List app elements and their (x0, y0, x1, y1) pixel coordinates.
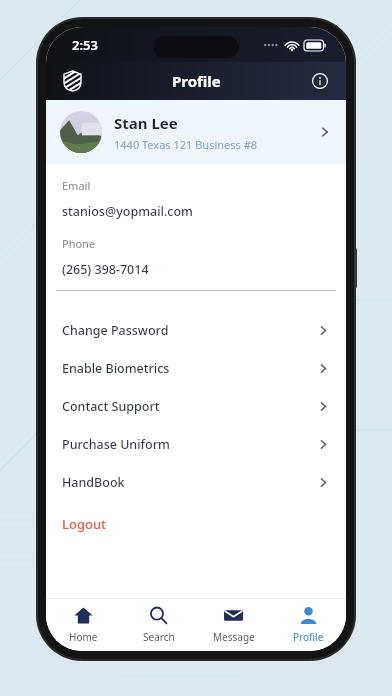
staticText: 1440 Texas 121 Business #8 (114, 137, 258, 152)
staticText: Profile (172, 71, 221, 91)
staticText: Phone (62, 236, 96, 251)
staticText: Search (143, 630, 175, 644)
staticText: Stan Lee (114, 113, 178, 133)
staticText: Profile (293, 630, 324, 644)
staticText: Purchase Uniform (62, 436, 317, 453)
button[interactable]: Profile (271, 599, 346, 651)
button[interactable]: Stan Lee (46, 100, 346, 164)
staticText: Change Password (62, 322, 317, 339)
staticText: HandBook (62, 474, 317, 491)
staticText: stanios@yopmail.com (62, 203, 193, 220)
staticText: Home (69, 630, 98, 644)
button[interactable]: Change Password (46, 311, 346, 349)
button[interactable]: App logo (58, 67, 86, 95)
button[interactable]: Home (46, 599, 121, 651)
button[interactable]: Message (196, 599, 271, 651)
button[interactable]: Logout (46, 509, 346, 539)
button[interactable]: HandBook (46, 463, 346, 501)
button[interactable]: Purchase Uniform (46, 425, 346, 463)
staticText: Enable Biometrics (62, 360, 317, 377)
staticText: (265) 398-7014 (62, 261, 149, 278)
button[interactable]: Enable Biometrics (46, 349, 346, 387)
staticText: Message (213, 630, 255, 644)
button[interactable]: Information (306, 67, 334, 95)
staticText: Logout (62, 515, 107, 533)
button[interactable]: Search (121, 599, 196, 651)
staticText: Contact Support (62, 398, 317, 415)
staticText: 2:53 (72, 36, 98, 54)
staticText: Email (62, 178, 91, 193)
button[interactable]: Contact Support (46, 387, 346, 425)
